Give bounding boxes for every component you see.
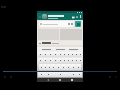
button[interactable] — [70, 71, 76, 77]
button[interactable]: Back — [47, 79, 49, 81]
button[interactable] — [56, 64, 61, 70]
button[interactable]: Fullscreen — [114, 75, 117, 78]
button[interactable]: Seek bar — [3, 71, 117, 72]
button[interactable] — [38, 71, 45, 77]
button[interactable] — [58, 58, 62, 63]
button[interactable]: Voice call — [75, 15, 79, 19]
button[interactable] — [43, 58, 48, 63]
button[interactable] — [43, 52, 48, 57]
button[interactable] — [39, 21, 74, 27]
button[interactable] — [76, 64, 81, 70]
button[interactable] — [38, 52, 43, 57]
button[interactable] — [48, 58, 53, 63]
button[interactable] — [74, 52, 78, 57]
button[interactable]: More options — [79, 15, 82, 18]
button[interactable] — [38, 58, 43, 63]
button[interactable] — [66, 52, 70, 57]
button[interactable] — [76, 71, 82, 77]
button[interactable] — [51, 71, 70, 77]
button[interactable] — [70, 52, 74, 57]
button[interactable] — [48, 52, 53, 57]
button[interactable] — [62, 58, 66, 63]
button[interactable]: Back — [38, 15, 41, 18]
button[interactable] — [39, 64, 43, 70]
button[interactable] — [51, 64, 56, 70]
button[interactable]: Play — [3, 75, 6, 78]
button[interactable] — [53, 52, 58, 57]
button[interactable]: Volume — [9, 75, 12, 78]
button[interactable] — [58, 52, 62, 57]
button[interactable] — [74, 58, 78, 63]
button[interactable]: Video call — [71, 15, 75, 19]
button[interactable] — [78, 52, 82, 57]
button[interactable] — [66, 64, 71, 70]
button[interactable] — [45, 71, 51, 77]
button[interactable]: Contact photo — [42, 14, 47, 19]
button[interactable] — [70, 58, 74, 63]
button[interactable]: Settings — [108, 75, 111, 78]
button[interactable] — [62, 52, 66, 57]
button[interactable] — [53, 58, 58, 63]
button[interactable]: Send — [75, 21, 81, 27]
button[interactable] — [71, 64, 76, 70]
button[interactable] — [47, 64, 51, 70]
button[interactable] — [66, 58, 70, 63]
button[interactable] — [43, 64, 47, 70]
button[interactable] — [61, 64, 66, 70]
button[interactable] — [48, 15, 71, 19]
button[interactable] — [78, 58, 82, 63]
